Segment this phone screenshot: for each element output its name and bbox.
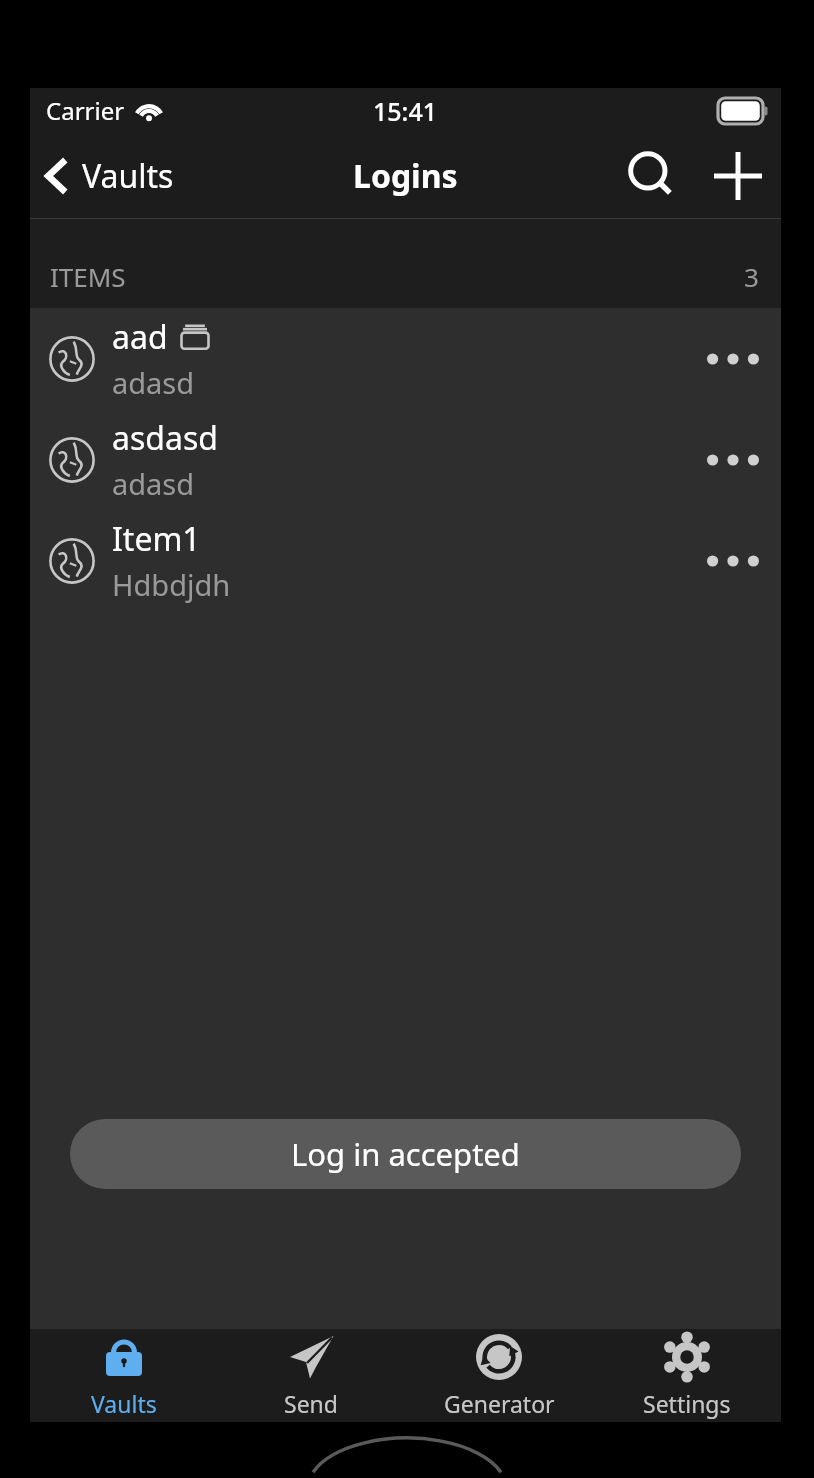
staticText: adasd bbox=[112, 464, 195, 503]
button[interactable]: More options bbox=[685, 510, 781, 611]
button[interactable]: More options bbox=[685, 409, 781, 510]
staticText: Item1 bbox=[112, 517, 201, 561]
staticText: asdasd bbox=[112, 416, 218, 460]
button[interactable]: Search bbox=[609, 133, 695, 219]
button[interactable]: asdasd bbox=[30, 409, 781, 510]
button[interactable]: Item1 bbox=[30, 510, 781, 611]
staticText: Log in accepted bbox=[291, 1133, 520, 1175]
button[interactable]: Generator bbox=[405, 1329, 593, 1422]
staticText: aad bbox=[112, 315, 168, 359]
staticText: 15:41 bbox=[373, 94, 438, 128]
button[interactable]: Log in accepted bbox=[70, 1119, 741, 1189]
staticText: Carrier bbox=[46, 94, 125, 127]
staticText: Generator bbox=[444, 1388, 555, 1419]
staticText: Vaults bbox=[82, 154, 174, 198]
button[interactable]: More options bbox=[685, 308, 781, 409]
staticText: Logins bbox=[353, 154, 458, 198]
staticText: Vaults bbox=[91, 1388, 157, 1419]
staticText: Settings bbox=[643, 1388, 731, 1419]
staticText: 3 bbox=[744, 259, 759, 294]
button[interactable]: aad bbox=[30, 308, 781, 409]
staticText: Send bbox=[284, 1388, 338, 1419]
staticText: Hdbdjdh bbox=[112, 565, 231, 604]
staticText: adasd bbox=[112, 363, 195, 402]
staticText: ITEMS bbox=[50, 259, 126, 294]
button[interactable]: Send bbox=[217, 1329, 405, 1422]
button[interactable]: Vaults bbox=[30, 1329, 217, 1422]
button[interactable]: Vaults bbox=[30, 133, 188, 219]
button[interactable]: Settings bbox=[593, 1329, 781, 1422]
button[interactable]: Add item bbox=[695, 133, 781, 219]
